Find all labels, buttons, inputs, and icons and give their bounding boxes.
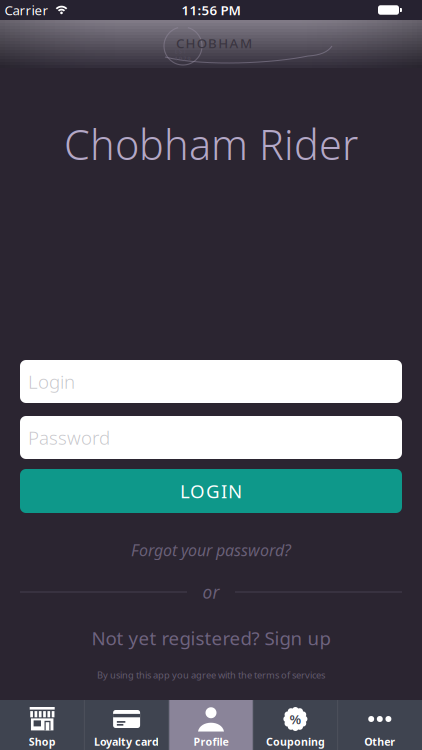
staticText: Login [28, 369, 75, 394]
button[interactable]: Loyalty card [84, 700, 169, 750]
staticText: Not yet registered? Sign up [91, 626, 330, 650]
staticText: EST 1979 [175, 48, 205, 55]
staticText: Couponing [266, 734, 325, 749]
button[interactable]: Shop [0, 700, 84, 750]
staticText: Loyalty card [94, 734, 159, 749]
staticText: 11:56 PM [181, 1, 240, 19]
staticText: CHOBHAM [176, 34, 252, 52]
staticText: Carrier [4, 1, 48, 19]
staticText: Profile [193, 734, 228, 749]
button[interactable]: Password [20, 416, 402, 459]
staticText: Chobham Rider [64, 117, 358, 171]
button[interactable]: Profile [169, 700, 253, 750]
staticText: or [202, 580, 219, 603]
button[interactable]: Other [338, 700, 422, 750]
button[interactable]: Not yet registered? Sign up [91, 626, 330, 650]
button[interactable]: LOGIN [20, 469, 402, 513]
staticText: Password [28, 425, 110, 450]
staticText: By using this app you agree with the ter… [97, 669, 325, 681]
button[interactable]: Login [20, 360, 402, 403]
staticText: LOGIN [180, 479, 242, 503]
staticText: Forgot your password? [131, 539, 291, 561]
staticText: Shop [29, 734, 56, 749]
button[interactable]: % [253, 700, 338, 750]
staticText: % [289, 710, 301, 728]
button[interactable]: Forgot your password? [131, 539, 291, 561]
staticText: Other [364, 734, 395, 749]
